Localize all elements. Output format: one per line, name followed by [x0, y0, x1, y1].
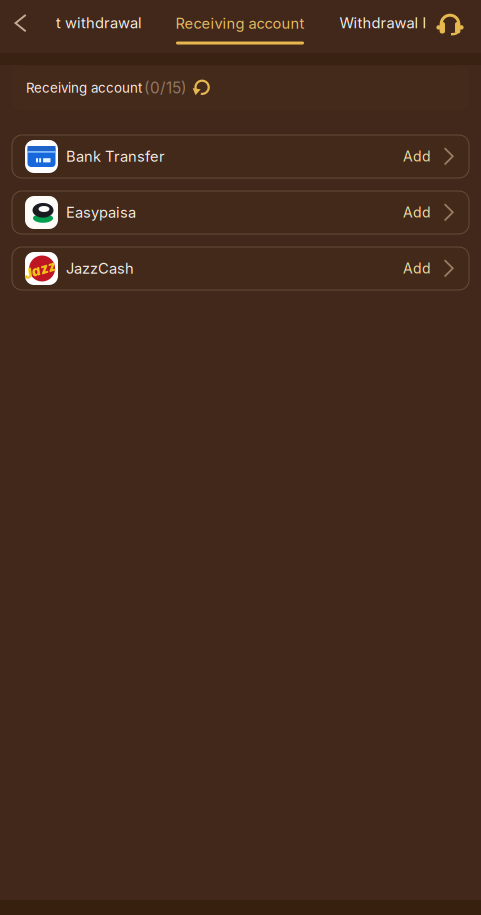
- button[interactable]: Jazz: [12, 247, 469, 290]
- staticText: Receiving account: [26, 80, 142, 96]
- staticText: Easypaisa: [66, 204, 136, 221]
- button[interactable]: Refresh: [187, 73, 218, 103]
- staticText: Withdrawal l: [339, 14, 426, 32]
- button[interactable]: Receiving account: [170, 0, 310, 50]
- staticText: Receiving account: [175, 15, 304, 32]
- staticText: t withdrawal: [56, 14, 142, 32]
- button[interactable]: Easypaisa: [12, 191, 469, 234]
- button[interactable]: Bank Transfer: [12, 135, 469, 178]
- staticText: Add: [403, 148, 431, 165]
- staticText: Bank Transfer: [66, 148, 165, 165]
- staticText: Add: [403, 204, 431, 221]
- button[interactable]: Back: [0, 0, 40, 46]
- staticText: JazzCash: [66, 260, 134, 277]
- button[interactable]: Withdrawal l: [335, 0, 431, 46]
- staticText: Jazz: [23, 262, 56, 278]
- button[interactable]: Customer service: [430, 1, 470, 45]
- button[interactable]: t withdrawal: [49, 0, 149, 46]
- staticText: (0/15): [144, 79, 187, 97]
- staticText: Add: [403, 260, 431, 277]
